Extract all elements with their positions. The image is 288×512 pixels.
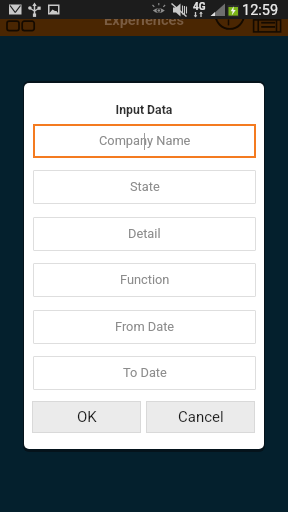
staticText: Function: [120, 272, 170, 287]
button[interactable]: Cancel: [146, 401, 255, 433]
button[interactable]: To Date: [33, 356, 256, 390]
button[interactable]: Detail: [33, 217, 256, 251]
staticText: Cancel: [178, 408, 224, 426]
button[interactable]: Function: [33, 263, 256, 297]
button[interactable]: List: [252, 18, 284, 34]
button[interactable]: OK: [32, 401, 141, 433]
staticText: 12:59: [242, 2, 279, 19]
staticText: Company Name: [99, 133, 191, 148]
staticText: 4G: [193, 1, 206, 13]
button[interactable]: State: [33, 170, 256, 204]
button[interactable]: Timer: [213, 0, 247, 34]
staticText: OK: [77, 408, 97, 426]
button[interactable]: Company Name: [33, 124, 256, 158]
staticText: State: [130, 179, 160, 194]
button[interactable]: From Date: [33, 310, 256, 344]
button[interactable]: Apps: [0, 18, 40, 34]
staticText: Experiences: [104, 11, 184, 28]
staticText: To Date: [123, 365, 167, 380]
staticText: From Date: [115, 319, 175, 334]
staticText: Input Data: [24, 103, 264, 117]
staticText: Detail: [128, 226, 161, 241]
